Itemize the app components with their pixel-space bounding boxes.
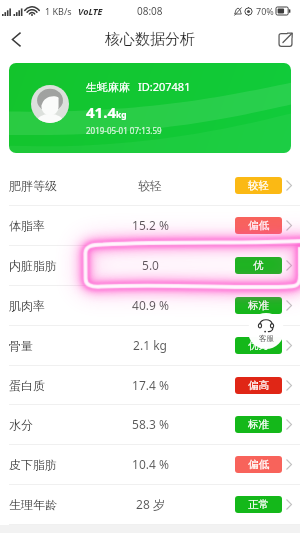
button[interactable]: 肥胖等级 [0, 165, 300, 205]
staticText: 肌肉率 [9, 298, 45, 313]
staticText: 骨量 [9, 338, 33, 353]
button[interactable]: 生蚝麻麻 [9, 63, 291, 153]
staticText: 28 岁 [136, 496, 165, 512]
button[interactable]: 体脂率 [0, 205, 300, 245]
button[interactable]: 骨量 [0, 325, 300, 365]
button[interactable]: Back [0, 22, 32, 56]
button[interactable]: 水分 [0, 404, 300, 444]
staticText: 较轻 [138, 178, 162, 193]
button[interactable]: 客服 [248, 313, 284, 349]
staticText: 生理年龄 [9, 497, 57, 512]
staticText: 内脏脂肪 [9, 258, 57, 273]
button[interactable]: 内脏脂肪 [0, 245, 300, 285]
staticText: 1 KB/s [45, 5, 72, 17]
staticText: 体脂率 [9, 218, 45, 233]
staticText: 客服 [259, 334, 274, 343]
staticText: 58.3 % [132, 416, 169, 432]
staticText: 偏低 [248, 219, 269, 232]
staticText: 优 [253, 259, 264, 272]
staticText: 标准 [248, 299, 269, 312]
button[interactable]: 皮下脂肪 [0, 444, 300, 484]
staticText: VoLTE [78, 5, 103, 17]
staticText: 标准 [248, 418, 269, 431]
staticText: 肥胖等级 [9, 178, 57, 193]
staticText: 41.4 [86, 102, 116, 122]
staticText: 偏高 [248, 379, 269, 392]
staticText: 17.4 % [132, 377, 169, 393]
staticText: 偏低 [248, 458, 269, 471]
staticText: 较轻 [248, 179, 269, 192]
staticText: 15.2 % [132, 217, 169, 233]
staticText: 2.1 kg [133, 337, 167, 353]
staticText: kg [116, 109, 127, 121]
staticText: 水分 [9, 417, 33, 432]
staticText: ID:207481 [138, 79, 191, 94]
staticText: 70% [256, 5, 274, 17]
button[interactable]: 蛋白质 [0, 365, 300, 405]
button[interactable]: 肌肉率 [0, 285, 300, 325]
staticText: 5.0 [142, 257, 159, 273]
staticText: 生蚝麻麻 [86, 80, 130, 94]
staticText: 优秀 [248, 339, 269, 352]
button[interactable]: 生理年龄 [0, 484, 300, 524]
staticText: 08:08 [137, 4, 163, 18]
button[interactable]: Share [270, 22, 300, 56]
staticText: 核心数据分析 [105, 30, 195, 49]
staticText: 10.4 % [132, 456, 169, 472]
staticText: 正常 [248, 498, 269, 511]
staticText: 蛋白质 [9, 378, 45, 393]
staticText: 40.9 % [132, 297, 169, 313]
staticText: 2019-05-01 07:13.59 [86, 125, 162, 136]
staticText: 皮下脂肪 [9, 457, 57, 472]
